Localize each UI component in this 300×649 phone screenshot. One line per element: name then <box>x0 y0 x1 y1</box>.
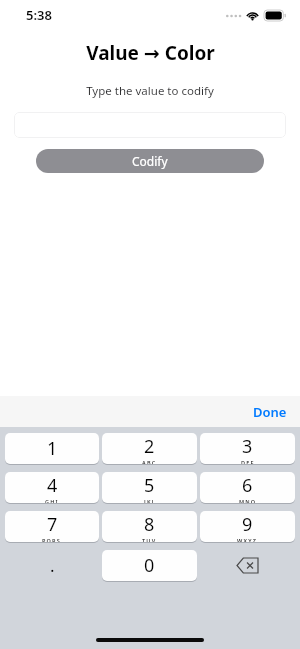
button[interactable]: 2 <box>102 433 197 464</box>
staticText: GHI <box>45 498 59 503</box>
staticText: Done <box>253 403 287 421</box>
staticText: 9 <box>242 512 253 537</box>
button[interactable]: 5 <box>102 472 197 503</box>
button[interactable]: 8 <box>102 511 197 542</box>
staticText: Type the value to codify <box>86 83 214 99</box>
button[interactable]: 3 <box>200 433 295 464</box>
button[interactable]: Codify <box>36 149 264 173</box>
staticText: 4 <box>47 473 58 498</box>
staticText: Value → Color <box>86 40 215 66</box>
staticText: WXYZ <box>237 537 258 542</box>
button[interactable]: 1 <box>5 433 99 464</box>
staticText: 8 <box>144 512 155 537</box>
button[interactable]: 7 <box>5 511 99 542</box>
staticText: . <box>50 554 55 577</box>
button[interactable]: 0 <box>102 550 197 581</box>
staticText: 2 <box>144 434 155 459</box>
staticText: 3 <box>242 434 253 459</box>
staticText: 0 <box>144 553 155 578</box>
staticText: PQRS <box>42 537 62 542</box>
staticText: 6 <box>242 473 253 498</box>
button[interactable]: 9 <box>200 511 295 542</box>
staticText: ABC <box>142 459 157 464</box>
staticText: DEF <box>241 459 255 464</box>
button[interactable]: 4 <box>5 472 99 503</box>
button[interactable] <box>14 112 286 138</box>
button[interactable]: Backspace <box>200 550 295 581</box>
staticText: 1 <box>47 436 58 461</box>
staticText: MNO <box>239 498 257 503</box>
staticText: JKL <box>144 498 156 503</box>
button[interactable]: Done <box>248 400 292 424</box>
button[interactable]: 6 <box>200 472 295 503</box>
staticText: 5 <box>144 473 155 498</box>
button[interactable]: . <box>5 550 99 581</box>
staticText: 7 <box>47 512 58 537</box>
staticText: TUV <box>142 537 157 542</box>
staticText: Codify <box>132 153 168 169</box>
staticText: 5:38 <box>26 6 52 24</box>
